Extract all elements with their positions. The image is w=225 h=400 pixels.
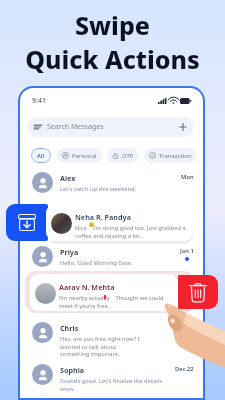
other: New message xyxy=(179,123,187,131)
staticText: I'm nearby actually Thought we could mee… xyxy=(59,294,175,309)
button[interactable]: Search Messages xyxy=(27,117,194,137)
button[interactable]: Neha R. Pandya xyxy=(46,204,193,241)
staticText: Swipe xyxy=(75,8,150,42)
staticText: Personal xyxy=(72,152,97,160)
button[interactable]: OTP xyxy=(107,148,139,163)
button[interactable]: All xyxy=(31,148,51,163)
button[interactable]: Alex xyxy=(18,172,205,193)
staticText: Chris xyxy=(60,323,79,333)
button[interactable]: Transaction xyxy=(144,148,197,163)
staticText: Quick Actions xyxy=(25,42,200,76)
staticText: Hello, Good Morning Dear. xyxy=(60,259,133,267)
button[interactable]: Priya xyxy=(18,246,205,267)
staticText: Nice I'm doing good too. Just grabbed a … xyxy=(75,224,188,239)
staticText: Mon xyxy=(181,173,194,181)
staticText: Search Messages xyxy=(47,122,104,132)
staticText: OTP xyxy=(122,152,134,160)
staticText: Sophia xyxy=(60,365,85,375)
staticText: Alex xyxy=(60,173,76,183)
staticText: All xyxy=(37,152,45,160)
button[interactable]: Archive xyxy=(6,204,48,241)
staticText: 9:41 xyxy=(32,96,46,106)
staticText: Jan 1 xyxy=(180,247,194,255)
staticText: Dec 22 xyxy=(175,365,194,373)
button[interactable]: Aarav N. Mehta xyxy=(30,274,178,311)
staticText: Transaction xyxy=(159,152,192,160)
button[interactable]: Sophia xyxy=(18,364,205,391)
staticText: Aarav N. Mehta xyxy=(59,282,115,292)
button[interactable]: Personal xyxy=(57,148,102,163)
staticText: Hey, are you free right now? I wanted to… xyxy=(60,335,140,357)
staticText: Sounds good. Let's finalize the details … xyxy=(60,377,168,392)
staticText: Priya xyxy=(60,247,79,257)
staticText: Neha R. Pandya xyxy=(75,212,131,222)
button[interactable]: Delete xyxy=(178,275,218,309)
staticText: Let's catch up this weekend. xyxy=(60,185,137,193)
button[interactable]: Chris xyxy=(18,322,205,356)
